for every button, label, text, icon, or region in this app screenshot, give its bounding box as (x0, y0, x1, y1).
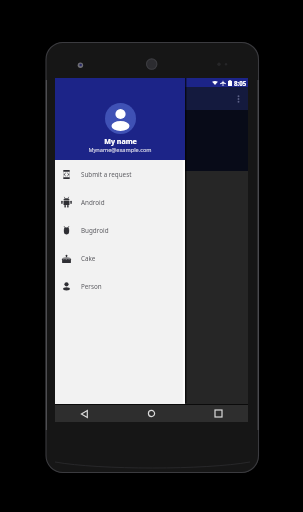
button[interactable]: Cake (55, 244, 185, 272)
button[interactable]: Android (55, 188, 185, 216)
staticText: Myname@example.com (88, 146, 152, 154)
button[interactable]: Submit a request (55, 160, 185, 188)
staticText: Android (81, 198, 105, 207)
staticText: Person (81, 282, 102, 291)
button[interactable]: More options (231, 92, 245, 106)
staticText: Cake (81, 254, 96, 263)
staticText: My name (104, 136, 137, 146)
staticText: 8:05 (234, 79, 247, 87)
button[interactable]: Home (143, 405, 160, 422)
button[interactable]: Recents (210, 405, 227, 422)
button[interactable]: Back (76, 405, 93, 422)
button[interactable]: Bugdroid (55, 216, 185, 244)
staticText: Bugdroid (81, 226, 109, 235)
button[interactable]: Person (55, 272, 185, 300)
staticText: Submit a request (81, 170, 132, 179)
